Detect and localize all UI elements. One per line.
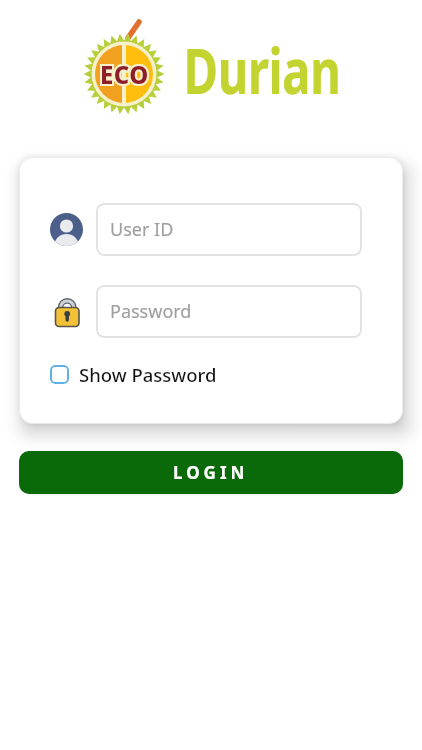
staticText: Durian (175, 28, 349, 112)
button[interactable]: User ID (96, 203, 362, 256)
button[interactable]: Show Password (50, 362, 217, 387)
staticText: User ID (110, 217, 174, 242)
staticText: ECO (100, 58, 149, 91)
button[interactable]: Password (96, 285, 362, 338)
staticText: Show Password (79, 362, 217, 387)
button[interactable]: LOGIN (19, 451, 403, 494)
staticText: ECO (100, 58, 149, 91)
staticText: LOGIN (173, 461, 249, 484)
staticText: Password (110, 299, 192, 324)
